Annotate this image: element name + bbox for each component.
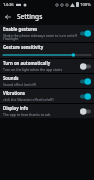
staticText: Sounds xyxy=(3,75,19,81)
staticText: Gesture sensitivity xyxy=(3,44,44,50)
button[interactable]: Enable gestures xyxy=(0,25,94,42)
button[interactable]: Gesture sensitivity xyxy=(0,43,94,58)
button[interactable]: Back xyxy=(2,11,14,23)
staticText: Turn on automatically xyxy=(3,60,51,66)
staticText: click lets Vibration effect(on/off) xyxy=(3,97,54,102)
staticText: Vibrations xyxy=(3,90,25,96)
staticText: Turn on the light when the app starts xyxy=(3,67,63,72)
button[interactable]: Toggle on xyxy=(80,30,91,37)
staticText: 14:36 xyxy=(3,2,14,8)
button[interactable]: Toggle on xyxy=(80,78,91,85)
staticText: Sound effect (on/off) xyxy=(3,82,36,87)
button[interactable]: Toggle off xyxy=(80,63,91,70)
button[interactable]: Vibrations xyxy=(0,89,94,103)
button[interactable]: Toggle on xyxy=(80,93,91,100)
button[interactable]: Toggle off xyxy=(80,108,91,115)
staticText: The app to hear thanks to ads xyxy=(3,112,51,117)
button[interactable]: Turn on automatically xyxy=(0,59,94,73)
staticText: Settings xyxy=(17,12,43,21)
staticText: Shake the phone sideways twice to turn o… xyxy=(3,33,78,41)
staticText: 100% xyxy=(80,2,91,8)
staticText: Display info xyxy=(3,105,29,111)
button[interactable]: Sounds xyxy=(0,74,94,88)
button[interactable]: Display info xyxy=(0,104,94,118)
other: Gesture sensitivity slider xyxy=(3,53,91,57)
staticText: Enable gestures xyxy=(3,26,38,32)
